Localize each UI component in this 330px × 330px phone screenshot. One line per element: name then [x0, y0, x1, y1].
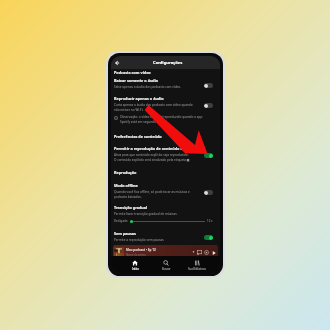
button[interactable]: Play — [211, 250, 216, 255]
button[interactable]: Início — [122, 256, 148, 271]
staticText: Sem pausas — [114, 231, 137, 236]
staticText: 12 s — [207, 219, 213, 223]
button[interactable] — [204, 190, 213, 195]
button[interactable] — [204, 83, 213, 88]
staticText: Sua Biblioteca — [188, 267, 206, 271]
button[interactable]: Reproduzir apenas o áudio — [111, 96, 220, 112]
button[interactable]: Modo offline — [111, 183, 220, 199]
staticText: Ativa para que conteúdo explícito seja r… — [114, 153, 190, 162]
other: Devices — [204, 250, 209, 255]
button[interactable]: Back — [113, 59, 121, 67]
other: Connect to a device — [197, 250, 202, 255]
staticText: Permitir a reprodução de conteúdo explíc… — [114, 146, 197, 151]
staticText: Modo offline — [114, 183, 138, 188]
staticText: Permite fazer transição gradual de músic… — [114, 212, 177, 216]
staticText: Preferências de conteúdo — [114, 134, 162, 139]
staticText: Permite a reprodução sem pausas — [114, 238, 164, 242]
button[interactable]: Sem pausas — [111, 231, 220, 242]
button[interactable]: Transição gradual — [111, 205, 220, 223]
staticText: Salve apenas o áudio dos podcasts com ví… — [114, 85, 181, 89]
staticText: Quando você fica offline, só pode tocar … — [114, 190, 190, 199]
button[interactable]: Permitir a reprodução de conteúdo explíc… — [111, 146, 220, 162]
staticText: Curta apenas o áudio dos podcasts com ví… — [114, 103, 193, 112]
staticText: Transição gradual — [114, 205, 148, 210]
staticText: Início — [132, 267, 139, 271]
button[interactable] — [204, 153, 213, 158]
staticText: Observação: o vídeo não será reproduzido… — [120, 115, 203, 124]
button[interactable]: Sua Biblioteca — [184, 256, 210, 271]
button[interactable] — [204, 235, 213, 240]
button[interactable]: Meu podcast • Ep 12 — [113, 245, 218, 259]
button[interactable]: Baixar somente o áudio — [111, 78, 220, 89]
staticText: Meu podcast • Ep 12 — [126, 248, 156, 252]
staticText: Nome do artista — [126, 253, 146, 257]
staticText: Podcasts com vídeo — [114, 70, 151, 75]
staticText: Baixar somente o áudio — [114, 78, 159, 83]
staticText: Buscar — [162, 267, 171, 271]
button[interactable]: Buscar — [153, 256, 179, 271]
button[interactable] — [204, 103, 213, 108]
staticText: Reproduzir apenas o áudio — [114, 96, 164, 101]
staticText: Configurações — [153, 60, 183, 66]
staticText: Desligado — [114, 219, 128, 223]
staticText: Reprodução — [114, 170, 137, 175]
